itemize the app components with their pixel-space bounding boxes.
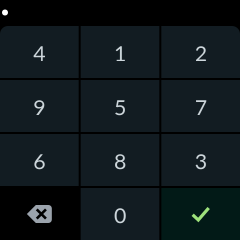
staticText: 0	[114, 202, 126, 228]
staticText: 4	[33, 40, 45, 66]
staticText: 9	[33, 94, 45, 120]
staticText: 3	[195, 148, 207, 174]
button[interactable]: 2	[161, 26, 240, 78]
button[interactable]: Confirm	[161, 188, 240, 240]
button[interactable]: 4	[0, 26, 79, 78]
staticText: 1	[114, 40, 126, 66]
button[interactable]: 5	[81, 80, 159, 132]
button[interactable]: 9	[0, 80, 79, 132]
button[interactable]: 3	[161, 134, 240, 186]
staticText: 2	[195, 40, 207, 66]
staticText: 5	[114, 94, 126, 120]
staticText: 6	[33, 148, 45, 174]
staticText: 7	[195, 94, 207, 120]
staticText: 8	[114, 148, 126, 174]
button[interactable]: 0	[81, 188, 159, 240]
button[interactable]: 1	[81, 26, 159, 78]
button[interactable]: 7	[161, 80, 240, 132]
button[interactable]: 8	[81, 134, 159, 186]
button[interactable]: 6	[0, 134, 79, 186]
button[interactable]: Delete	[0, 188, 79, 240]
